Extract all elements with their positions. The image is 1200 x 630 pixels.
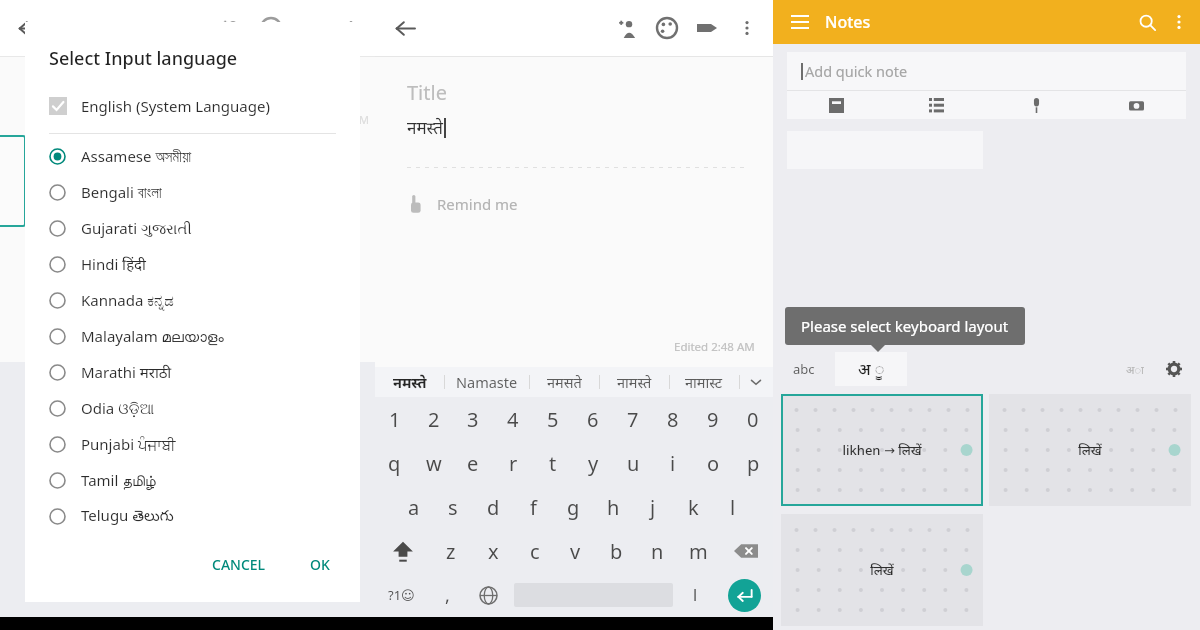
staticText: Assamese অসমীয়া <box>81 146 192 166</box>
button[interactable]: e <box>453 441 493 485</box>
button[interactable]: Tamil தமிழ் <box>25 462 360 498</box>
button[interactable]: k <box>673 485 713 529</box>
button[interactable]: c <box>514 529 555 573</box>
button[interactable]: Label <box>687 8 727 48</box>
button[interactable]: o <box>693 441 733 485</box>
button[interactable]: Add collaborator <box>607 8 647 48</box>
button[interactable]: More options <box>1164 7 1194 37</box>
button[interactable]: , <box>428 573 467 617</box>
button[interactable]: Shift <box>375 529 430 573</box>
button[interactable]: l <box>676 573 715 617</box>
button[interactable]: q <box>375 441 414 485</box>
button[interactable]: 6 <box>573 397 613 441</box>
button[interactable]: b <box>596 529 637 573</box>
button[interactable]: p <box>733 441 773 485</box>
button[interactable]: 3 <box>453 397 493 441</box>
button[interactable]: t <box>533 441 573 485</box>
button[interactable]: Add quick note <box>787 52 1186 90</box>
button[interactable]: Change language <box>467 573 510 617</box>
button[interactable]: Remind me <box>375 190 528 218</box>
staticText: 1 <box>389 406 401 433</box>
button[interactable]: Kannada ಕನ್ನಡ <box>25 282 360 318</box>
button[interactable] <box>510 573 676 617</box>
button[interactable]: Assamese অসমীয়া <box>25 138 360 174</box>
button[interactable]: New note <box>787 91 886 119</box>
button[interactable]: l <box>713 485 753 529</box>
button[interactable]: d <box>473 485 513 529</box>
staticText: y <box>588 450 599 477</box>
button[interactable]: More suggestions <box>739 367 773 397</box>
button[interactable]: English (System Language) <box>25 89 360 123</box>
button[interactable]: नमस्ते <box>375 367 444 397</box>
button[interactable]: 2 <box>414 397 453 441</box>
button[interactable]: Voice note <box>986 91 1086 119</box>
button[interactable]: नामस्ते <box>599 367 669 397</box>
staticText: नमसते <box>547 372 582 392</box>
button[interactable]: f <box>513 485 553 529</box>
button[interactable]: Settings <box>1154 352 1194 386</box>
button[interactable]: z <box>430 529 472 573</box>
button[interactable]: Gujarati ગુજરાતી <box>25 210 360 246</box>
button[interactable]: Odia ଓଡ଼ିଆ <box>25 390 360 426</box>
button[interactable]: abc <box>773 352 835 386</box>
button[interactable]: u <box>613 441 653 485</box>
button[interactable]: 0 <box>733 397 773 441</box>
staticText: Select Input language <box>49 46 238 71</box>
button[interactable]: लिखें <box>781 514 983 626</box>
button[interactable]: ?1☺ <box>375 573 428 617</box>
button[interactable]: Open navigation drawer <box>785 7 815 37</box>
staticText: CANCEL <box>212 555 266 574</box>
button[interactable]: Telugu తెలుగు <box>25 498 360 534</box>
button[interactable]: CANCEL <box>202 549 276 580</box>
button[interactable]: n <box>637 529 678 573</box>
button[interactable]: लिखें <box>989 394 1191 506</box>
button[interactable]: More options <box>727 8 767 48</box>
button[interactable]: Marathi मराठी <box>25 354 360 390</box>
button[interactable]: j <box>633 485 673 529</box>
button[interactable]: r <box>493 441 533 485</box>
button[interactable]: s <box>433 485 473 529</box>
button[interactable]: y <box>573 441 613 485</box>
button[interactable]: likhen → लिखें <box>781 394 983 506</box>
button[interactable]: नामास्ट <box>669 367 739 397</box>
button[interactable]: Hindi हिंदी <box>25 246 360 282</box>
button[interactable]: 1 <box>375 397 414 441</box>
button[interactable]: Enter <box>715 573 773 617</box>
button[interactable]: 7 <box>613 397 653 441</box>
staticText: l <box>730 494 736 521</box>
button[interactable]: w <box>414 441 453 485</box>
button[interactable]: Delete <box>719 529 773 573</box>
button[interactable]: OK <box>300 549 340 580</box>
staticText: n <box>651 538 664 565</box>
button[interactable]: अ ॗ <box>835 352 907 386</box>
button[interactable]: h <box>593 485 633 529</box>
staticText: Punjabi ਪੰਜਾਬੀ <box>81 434 176 454</box>
button[interactable]: More options <box>331 8 371 48</box>
button[interactable]: Back <box>8 8 48 48</box>
button[interactable]: Punjabi ਪੰਜਾਬੀ <box>25 426 360 462</box>
button[interactable]: New list <box>886 91 986 119</box>
button[interactable]: Keyboard <box>1116 352 1154 386</box>
button[interactable]: g <box>553 485 593 529</box>
button[interactable]: Namaste <box>444 367 529 397</box>
button[interactable]: Back <box>385 8 425 48</box>
button[interactable]: Change colour <box>647 8 687 48</box>
button[interactable]: a <box>394 485 433 529</box>
button[interactable]: v <box>555 529 596 573</box>
button[interactable]: नमसते <box>529 367 599 397</box>
button[interactable]: Add collaborator <box>211 8 251 48</box>
button[interactable]: Change colour <box>251 8 291 48</box>
button[interactable]: x <box>472 529 514 573</box>
button[interactable]: Bengali বাংলা <box>25 174 360 210</box>
button[interactable]: 9 <box>693 397 733 441</box>
button[interactable]: Photo note <box>1086 91 1186 119</box>
button[interactable]: m <box>678 529 719 573</box>
button[interactable]: i <box>653 441 693 485</box>
button[interactable]: 8 <box>653 397 693 441</box>
button[interactable]: 4 <box>493 397 533 441</box>
button[interactable]: Search <box>1130 5 1164 39</box>
button[interactable]: 5 <box>533 397 573 441</box>
button[interactable]: Malayalam മലയാളം <box>25 318 360 354</box>
